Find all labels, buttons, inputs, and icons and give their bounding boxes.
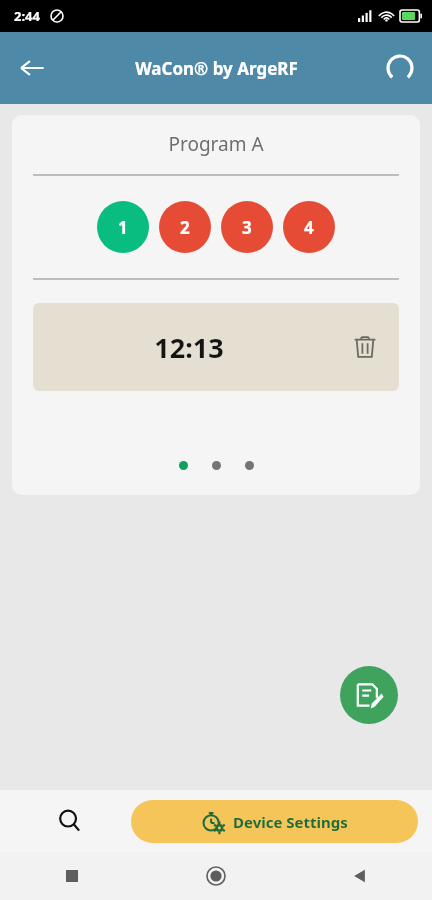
staticText: 2 [180, 216, 190, 239]
staticText: 4 [304, 216, 314, 239]
button[interactable]: Back [288, 852, 432, 900]
button[interactable]: Delete [345, 327, 385, 367]
staticText: WaCon® by ArgeRF [135, 57, 298, 80]
button[interactable]: 3 [221, 201, 273, 253]
staticText: Device Settings [233, 812, 348, 832]
button[interactable]: Refresh [376, 44, 424, 92]
staticText: 2:44 [14, 7, 40, 25]
button[interactable]: 4 [283, 201, 335, 253]
button[interactable]: Recent apps [0, 852, 144, 900]
button[interactable]: Search [46, 797, 94, 845]
button[interactable]: Edit program [340, 666, 398, 724]
button[interactable]: 1 [97, 201, 149, 253]
button[interactable]: 12:13 [33, 303, 399, 391]
button[interactable]: Home [144, 852, 288, 900]
staticText: 12:13 [33, 329, 345, 366]
button[interactable]: 2 [159, 201, 211, 253]
staticText: 1 [118, 216, 128, 239]
button[interactable]: Device Settings [131, 800, 418, 843]
staticText: Program A [12, 131, 420, 157]
button[interactable]: Back [8, 44, 56, 92]
staticText: 3 [242, 216, 252, 239]
